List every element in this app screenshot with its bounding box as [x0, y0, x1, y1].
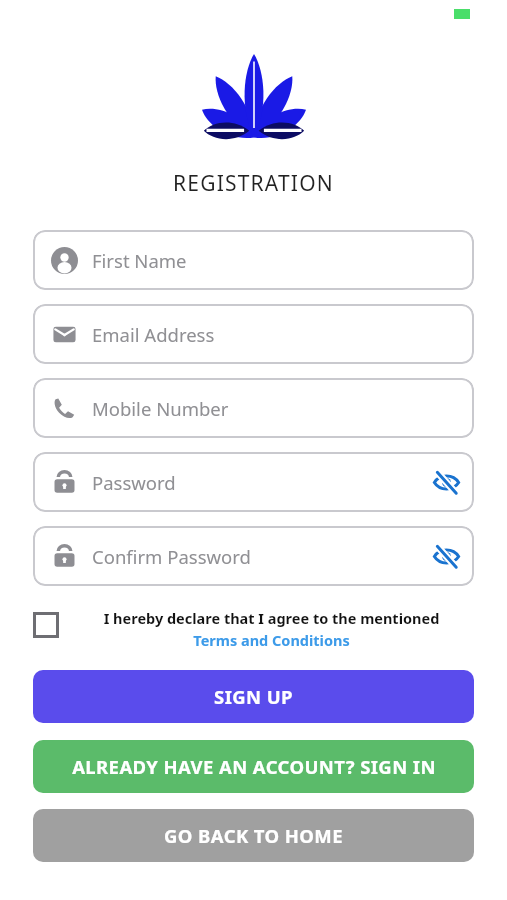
button[interactable]: ALREADY HAVE AN ACCOUNT? SIGN IN — [33, 740, 474, 793]
button[interactable]: SIGN UP — [33, 670, 474, 723]
staticText: GO BACK TO HOME — [164, 823, 343, 848]
staticText: Email Address — [92, 322, 456, 347]
button[interactable]: Email Address — [33, 304, 474, 364]
staticText: SIGN UP — [214, 684, 293, 709]
button[interactable]: Toggle password visibility — [424, 460, 468, 504]
staticText: First Name — [92, 248, 456, 273]
button[interactable]: First Name — [33, 230, 474, 290]
button[interactable]: Confirm Password — [33, 526, 474, 586]
button[interactable]: Agree to terms checkbox — [33, 612, 59, 638]
button[interactable]: Terms and Conditions — [69, 630, 474, 650]
button[interactable]: Mobile Number — [33, 378, 474, 438]
staticText: ALREADY HAVE AN ACCOUNT? SIGN IN — [72, 754, 436, 779]
staticText: Password — [92, 470, 424, 495]
button[interactable]: Password — [33, 452, 474, 512]
staticText: Confirm Password — [92, 544, 424, 569]
staticText: I hereby declare that I agree to the men… — [69, 608, 474, 628]
button[interactable]: Toggle password visibility — [424, 534, 468, 578]
button[interactable]: GO BACK TO HOME — [33, 809, 474, 862]
staticText: Mobile Number — [92, 396, 456, 421]
staticText: REGISTRATION — [173, 169, 334, 198]
